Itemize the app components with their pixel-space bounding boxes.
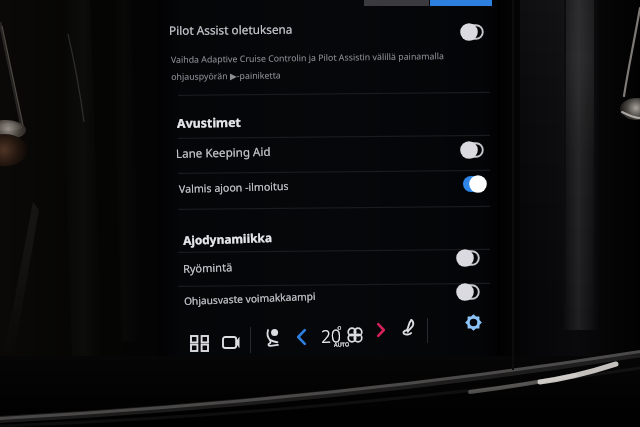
button[interactable]: Settings xyxy=(465,314,482,331)
staticText: Ajodynamiikka xyxy=(183,229,272,248)
button[interactable]: Lane Keeping Aid xyxy=(176,144,271,162)
button[interactable]: Ryömintä xyxy=(183,259,233,276)
button[interactable]: Switch off xyxy=(457,284,480,300)
button[interactable]: Switch off xyxy=(457,250,480,266)
staticText: Avustimet xyxy=(177,114,241,132)
button[interactable]: Apps xyxy=(191,336,208,351)
staticText: ° xyxy=(337,322,342,337)
button[interactable]: Temperature 20 degrees auto xyxy=(318,322,348,350)
button[interactable]: Seat heater xyxy=(402,319,415,335)
button[interactable]: Driver profile xyxy=(266,329,279,346)
staticText: Vaihda Adaptive Cruise Controlin ja Pilo… xyxy=(171,50,444,82)
staticText: 20 xyxy=(320,323,341,348)
button[interactable]: Fan speed xyxy=(348,328,362,342)
staticText: AUTO xyxy=(334,340,350,349)
button[interactable]: Camera xyxy=(222,336,240,349)
button[interactable]: Switch on xyxy=(463,176,486,192)
button[interactable]: Decrease temperature xyxy=(297,329,306,345)
button[interactable]: Valmis ajoon -ilmoitus xyxy=(179,179,289,196)
button[interactable]: Switch off xyxy=(461,142,484,158)
button[interactable]: Ohjausvaste voimakkaampi xyxy=(184,289,316,308)
button[interactable]: Pilot Assist oletuksena xyxy=(169,21,293,38)
button[interactable]: Switch off xyxy=(461,24,484,40)
button[interactable]: Increase temperature xyxy=(377,323,385,337)
